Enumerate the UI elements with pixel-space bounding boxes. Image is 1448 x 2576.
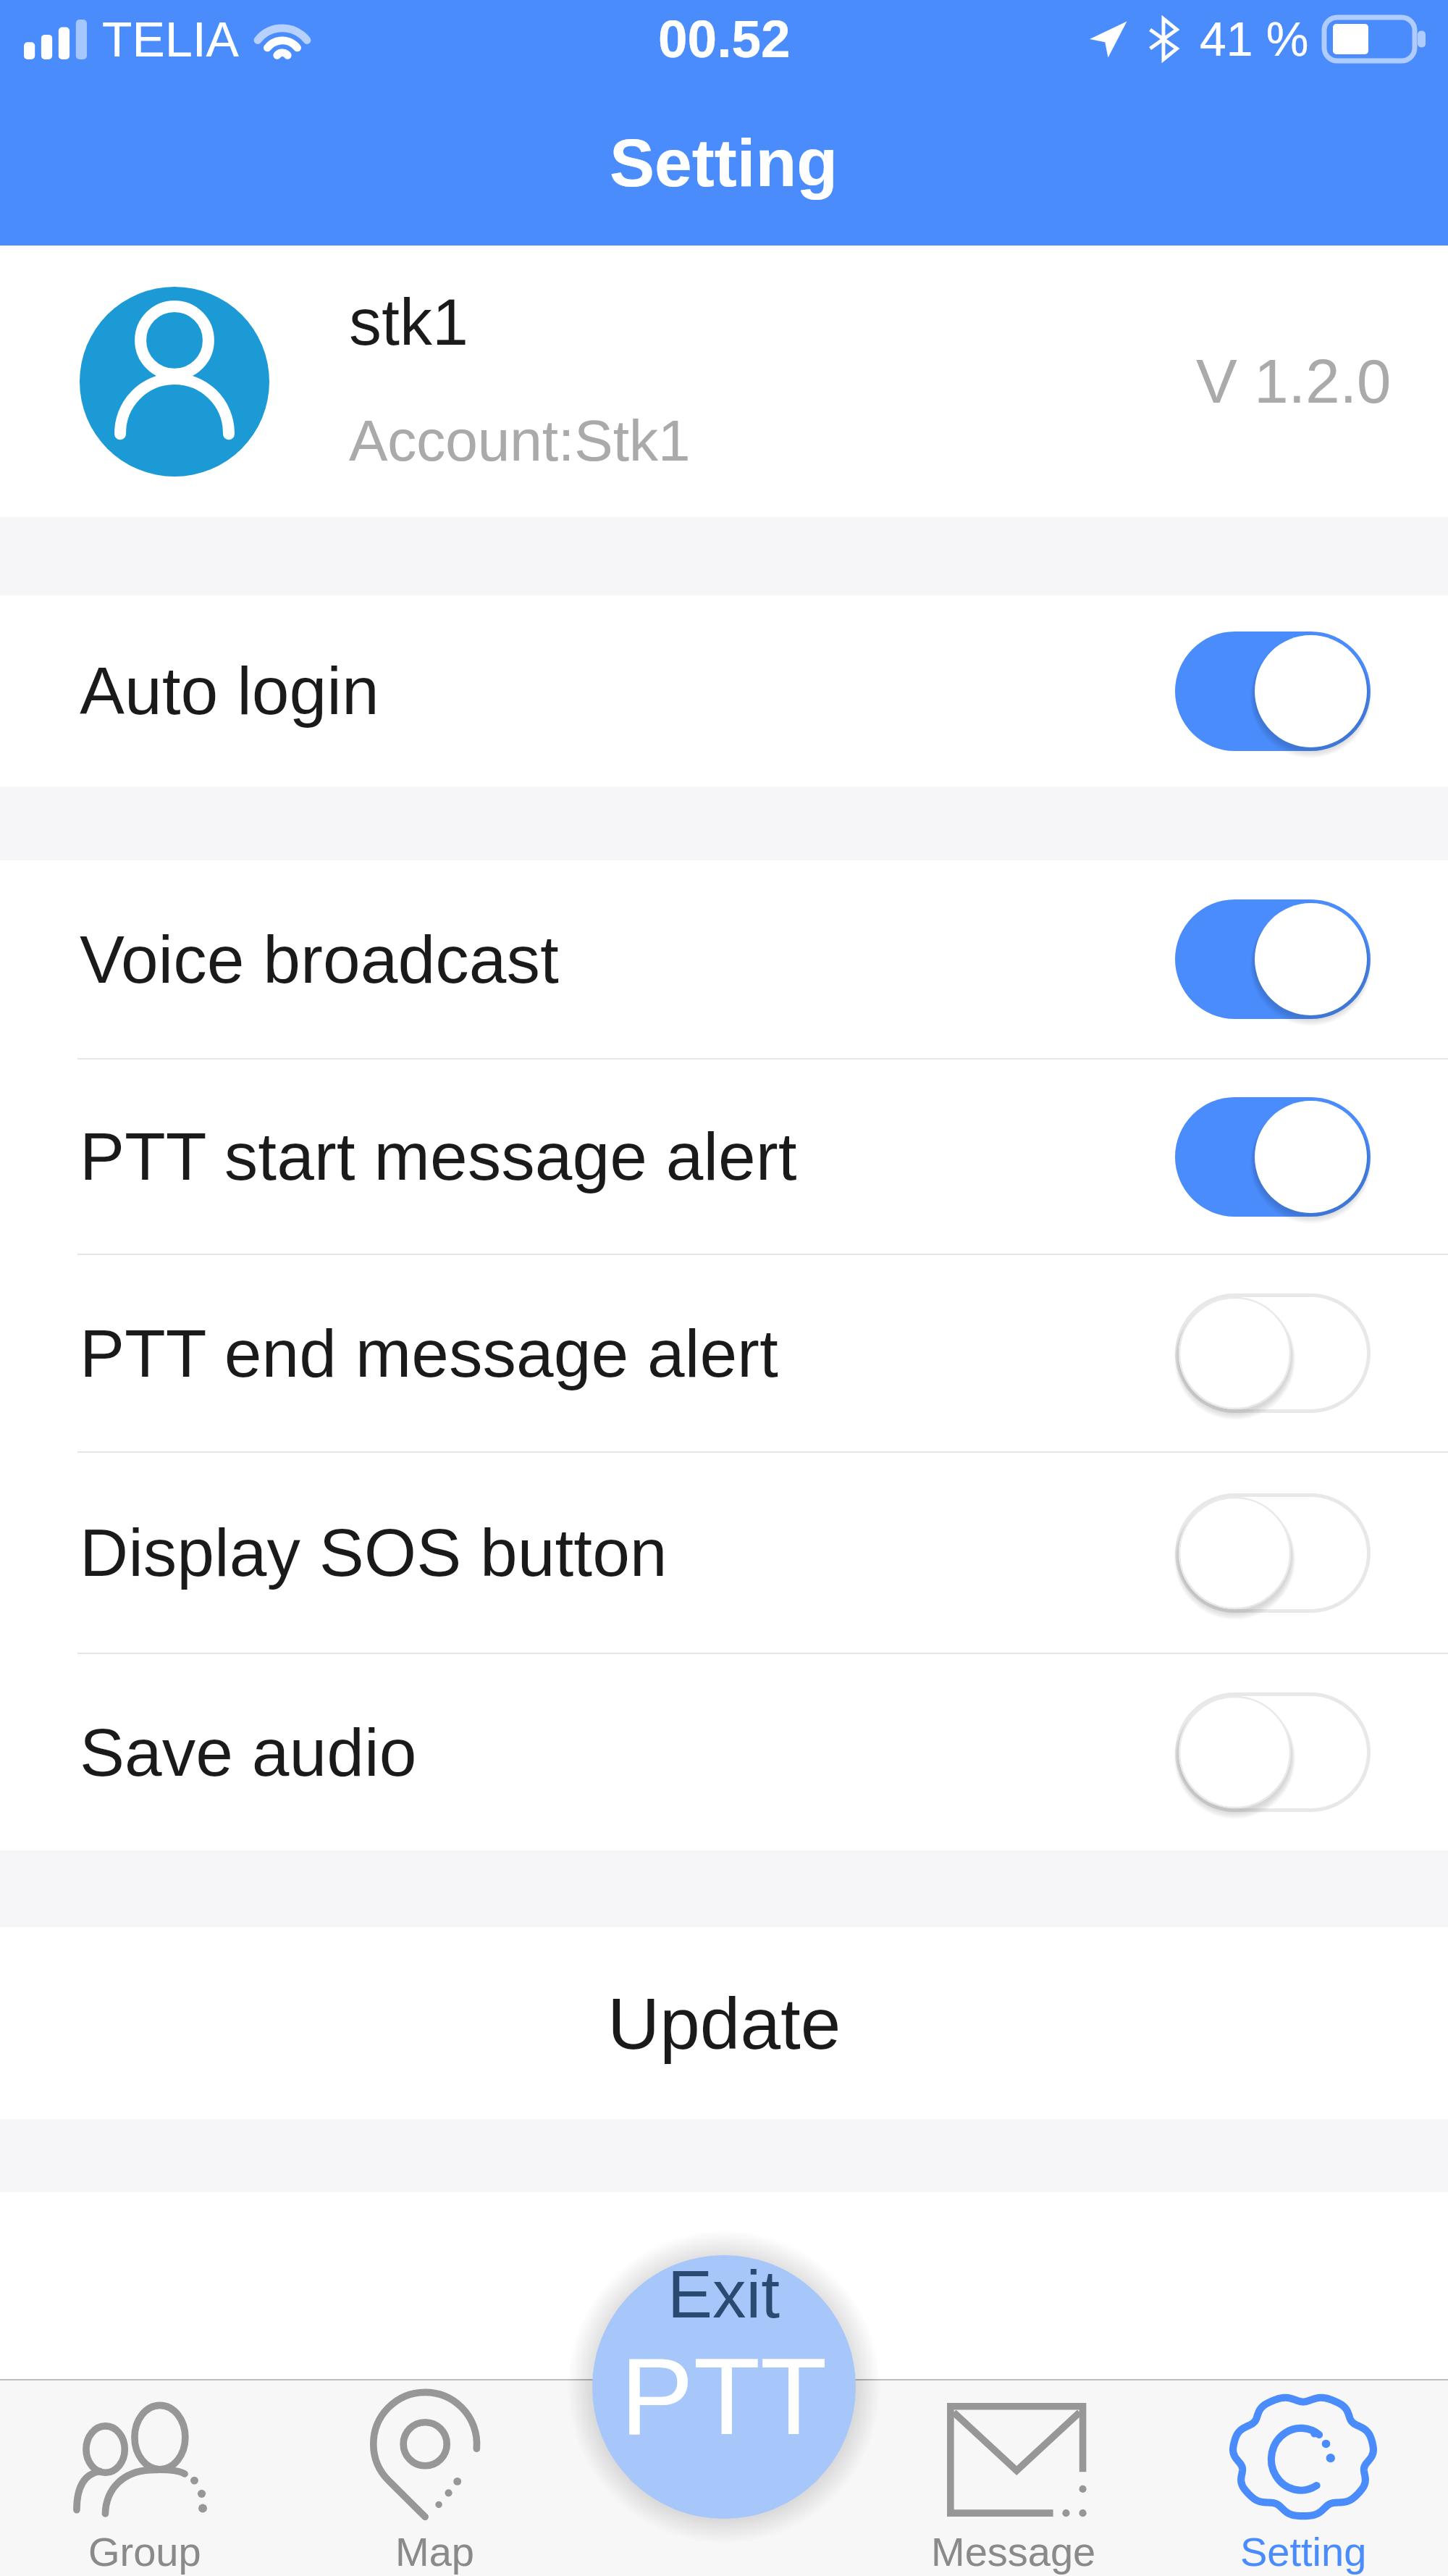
staticText: Setting xyxy=(610,125,838,201)
staticText: Display SOS button xyxy=(80,1515,1175,1590)
button[interactable]: Auto login xyxy=(0,595,1448,786)
button[interactable]: Voice broadcast on xyxy=(1175,899,1371,1019)
staticText: Group xyxy=(88,2529,201,2575)
button[interactable]: Save audio off xyxy=(1175,1692,1371,1812)
staticText: TELIA xyxy=(102,12,239,67)
staticText: Message xyxy=(931,2529,1096,2575)
staticText: V 1.2.0 xyxy=(1196,347,1392,416)
staticText: Exit xyxy=(668,2257,780,2332)
button[interactable]: Message xyxy=(869,2379,1158,2576)
staticText: Setting xyxy=(1240,2529,1367,2575)
button[interactable]: Save audio xyxy=(0,1654,1448,1850)
staticText: PTT xyxy=(620,2335,828,2457)
button[interactable]: Display SOS button xyxy=(0,1453,1448,1653)
button[interactable]: Setting xyxy=(1158,2379,1448,2576)
staticText: Auto login xyxy=(80,653,1175,729)
button[interactable]: Exit PTT xyxy=(592,2255,856,2519)
button[interactable]: PTT start message alert xyxy=(0,1060,1448,1254)
staticText: Voice broadcast xyxy=(80,922,1175,997)
staticText: 00.52 xyxy=(658,9,791,69)
button[interactable]: PTT start message alert on xyxy=(1175,1097,1371,1217)
staticText: PTT end message alert xyxy=(80,1316,1175,1391)
button[interactable]: stk1 xyxy=(0,246,1448,517)
button[interactable]: Update xyxy=(0,1927,1448,2119)
staticText: PTT start message alert xyxy=(80,1119,1175,1194)
staticText: Update xyxy=(607,1983,841,2064)
button[interactable]: PTT end message alert off xyxy=(1175,1293,1371,1413)
staticText: 41 % xyxy=(1200,12,1309,66)
button[interactable]: PTT end message alert xyxy=(0,1255,1448,1451)
button[interactable]: Group xyxy=(0,2379,290,2576)
button[interactable]: Map xyxy=(290,2379,579,2576)
button[interactable]: Auto login on xyxy=(1175,632,1371,751)
staticText: stk1 xyxy=(349,286,469,359)
button[interactable]: Display SOS button off xyxy=(1175,1493,1371,1613)
staticText: Save audio xyxy=(80,1715,1175,1790)
staticText: Map xyxy=(395,2529,474,2575)
button[interactable]: Voice broadcast xyxy=(0,860,1448,1058)
staticText: Account:Stk1 xyxy=(349,408,691,473)
